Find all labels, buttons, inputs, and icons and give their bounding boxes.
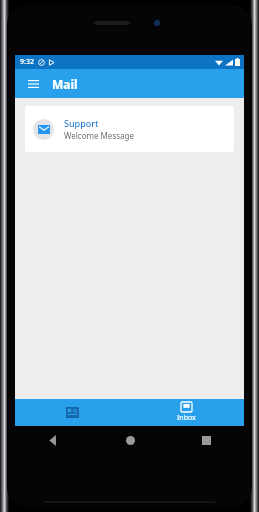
staticText: Support xyxy=(64,117,99,129)
staticText: Welcome Message xyxy=(64,130,134,141)
button[interactable]: Support xyxy=(25,106,234,152)
button[interactable]: Open navigation drawer xyxy=(23,74,43,94)
button[interactable]: Recent apps xyxy=(168,426,244,454)
button[interactable]: Contacts xyxy=(15,399,129,426)
button[interactable]: Inbox xyxy=(129,399,244,426)
staticText: Inbox xyxy=(177,413,196,423)
staticText: 9:32 xyxy=(20,57,34,67)
staticText: Mail xyxy=(52,76,78,92)
button[interactable]: Home xyxy=(92,426,168,454)
button[interactable]: Back xyxy=(15,426,92,454)
